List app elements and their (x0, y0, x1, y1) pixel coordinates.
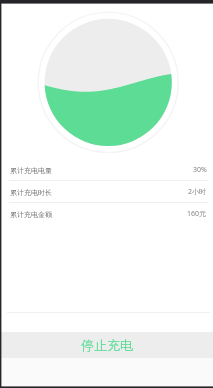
button[interactable]: 累计充电金额 (0, 203, 213, 225)
button[interactable]: 停止充电 (0, 332, 213, 358)
staticText: 停止充电 (81, 337, 133, 353)
button[interactable]: 累计充电电量 (0, 159, 213, 181)
button[interactable]: 累计充电时长 (0, 181, 213, 203)
staticText: 30% (193, 165, 207, 175)
other: Charging level gauge (0, 0, 213, 388)
staticText: 累计充电时长 (10, 188, 52, 197)
staticText: 2小时 (188, 187, 207, 197)
staticText: 累计充电金额 (10, 210, 52, 219)
staticText: 160元 (187, 209, 207, 219)
staticText: 累计充电电量 (10, 166, 52, 175)
